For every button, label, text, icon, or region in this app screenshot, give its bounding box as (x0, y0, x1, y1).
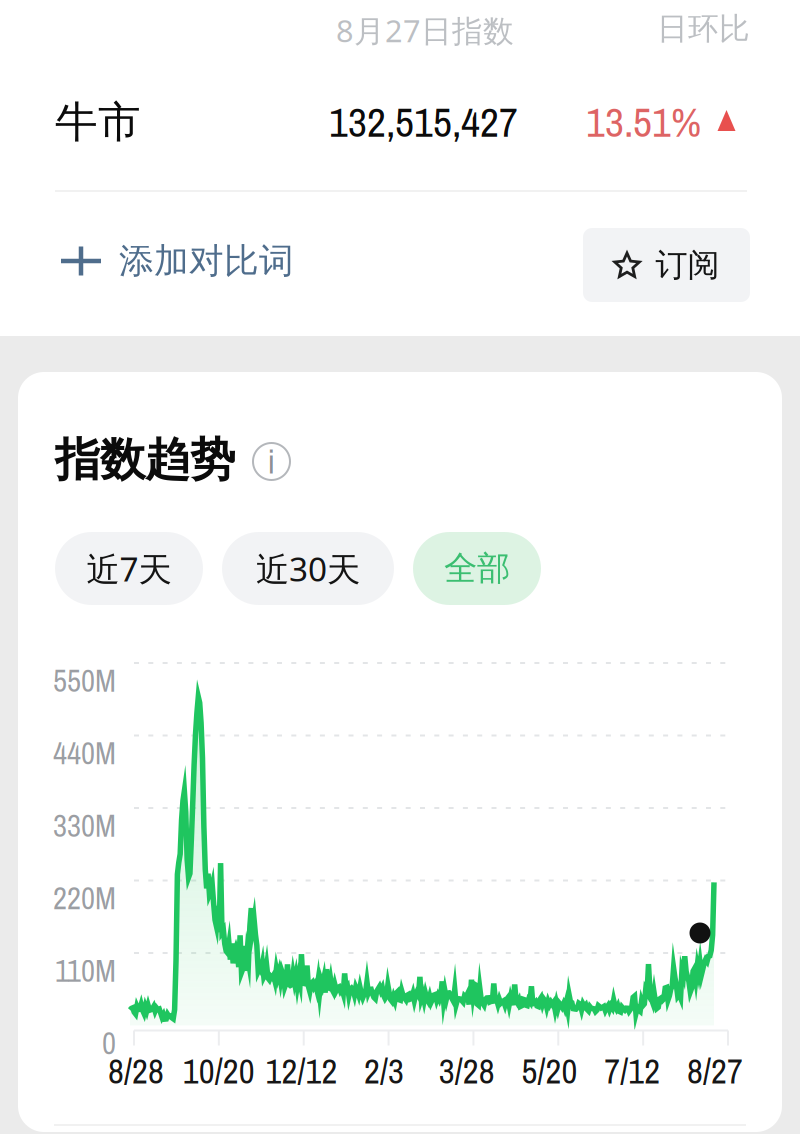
staticText: 近30天 (256, 546, 360, 591)
staticText: 12/12 (265, 1047, 337, 1094)
staticText: 5/20 (521, 1047, 577, 1094)
staticText: 132,515,427 (329, 94, 518, 150)
staticText: i (267, 439, 275, 484)
staticText: 440M (53, 732, 116, 774)
staticText: 550M (53, 660, 116, 701)
staticText: 13.51% (586, 94, 701, 150)
button[interactable]: 添加对比词 (55, 229, 300, 293)
staticText: 10/20 (183, 1047, 255, 1094)
staticText: 8/28 (108, 1047, 164, 1094)
staticText: 220M (53, 877, 116, 919)
staticText: 0 (102, 1022, 116, 1064)
staticText: 订阅 (655, 245, 719, 285)
staticText: 近7天 (86, 546, 171, 591)
staticText: 牛市 (55, 96, 141, 148)
staticText: 110M (55, 950, 116, 991)
staticText: 7/12 (604, 1047, 660, 1094)
staticText: 8/27 (687, 1047, 743, 1094)
button[interactable]: 近30天 (222, 532, 394, 605)
staticText: 2/3 (364, 1047, 404, 1094)
staticText: 添加对比词 (119, 240, 294, 282)
button[interactable]: 订阅 (583, 228, 750, 302)
staticText: 8月27日指数 (336, 10, 514, 51)
staticText: 全部 (444, 548, 510, 589)
button[interactable]: 全部 (413, 532, 541, 605)
button[interactable]: 近7天 (55, 532, 203, 605)
staticText: 指数趋势 (55, 432, 235, 488)
staticText: 330M (53, 805, 116, 846)
staticText: 日环比 (657, 10, 750, 48)
staticText: 3/28 (439, 1047, 495, 1094)
